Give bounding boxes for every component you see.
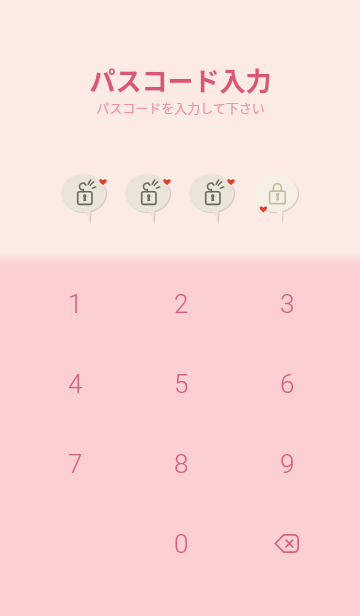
button[interactable]: 5 <box>128 344 234 424</box>
button[interactable]: 9 <box>234 424 340 504</box>
button[interactable]: 2 <box>128 264 234 344</box>
staticText: 0 <box>174 529 189 559</box>
button[interactable]: 6 <box>234 344 340 424</box>
staticText: 8 <box>174 449 189 479</box>
staticText: パスコード入力 <box>89 61 272 99</box>
staticText: 4 <box>68 369 83 399</box>
button[interactable]: 0 <box>128 504 234 584</box>
button[interactable]: 8 <box>128 424 234 504</box>
staticText: 9 <box>280 449 295 479</box>
button[interactable]: Backspace <box>234 504 340 584</box>
button[interactable]: 7 <box>22 424 128 504</box>
staticText: 2 <box>174 289 189 319</box>
staticText: 5 <box>174 369 189 399</box>
button[interactable]: 4 <box>22 344 128 424</box>
button[interactable]: 1 <box>22 264 128 344</box>
other: Backspace <box>274 534 299 553</box>
staticText: パスコードを入力して下さい <box>96 98 265 117</box>
button[interactable]: 3 <box>234 264 340 344</box>
staticText: 7 <box>68 449 83 479</box>
staticText: 6 <box>280 369 295 399</box>
staticText: 3 <box>280 289 295 319</box>
staticText: 1 <box>68 289 83 319</box>
